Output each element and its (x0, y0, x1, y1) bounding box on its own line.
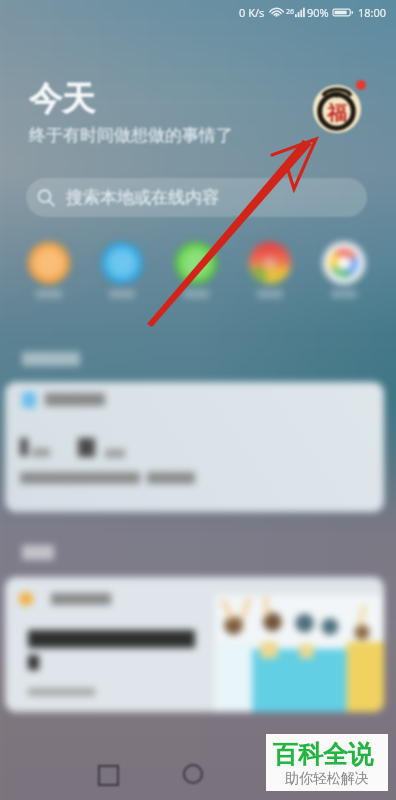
button[interactable]: App shortcut (101, 242, 143, 284)
button[interactable]: App shortcut (175, 242, 217, 284)
button[interactable]: App shortcut (28, 242, 70, 284)
staticText: 18:00 (358, 5, 387, 20)
button[interactable] (5, 382, 384, 512)
button[interactable]: 搜索本地或在线内容 (26, 178, 367, 217)
button[interactable] (5, 577, 384, 712)
staticText: 90% (307, 5, 329, 20)
button[interactable]: Browser (249, 242, 291, 284)
staticText: 福 (327, 101, 347, 126)
button[interactable]: Home (177, 758, 209, 790)
button[interactable]: Google (323, 242, 365, 284)
staticText: 助你轻松解决 (285, 770, 369, 788)
staticText: 26 (286, 7, 295, 17)
button[interactable]: Profile (313, 85, 361, 133)
staticText: 0 K/s (239, 5, 265, 20)
staticText: 百科全说 (273, 739, 373, 770)
staticText: 搜索本地或在线内容 (66, 187, 219, 208)
button[interactable]: Recent apps (92, 759, 124, 791)
staticText: 终于有时间做想做的事情了 (29, 125, 233, 146)
staticText: 今天 (29, 78, 95, 120)
